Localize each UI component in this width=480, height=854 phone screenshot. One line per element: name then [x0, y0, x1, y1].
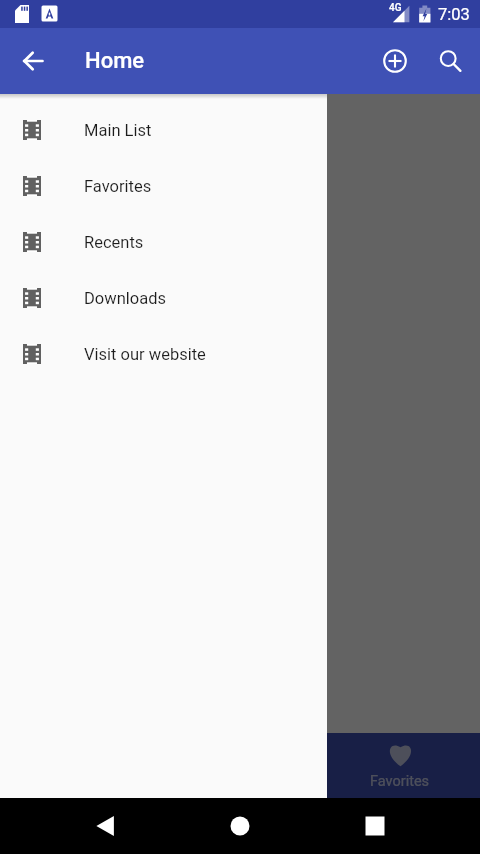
button[interactable]: Recents — [0, 214, 327, 270]
button[interactable]: Favorites — [0, 158, 327, 214]
staticText: Home — [85, 48, 145, 74]
staticText: Favorites — [370, 773, 430, 790]
staticText: Main List — [84, 121, 152, 140]
staticText: Visit our website — [84, 345, 206, 364]
staticText: Recents — [84, 233, 144, 252]
staticText: 4G — [389, 2, 402, 14]
button[interactable]: Home — [212, 798, 268, 854]
button[interactable]: Main List — [0, 102, 327, 158]
button[interactable]: Add — [371, 37, 419, 85]
staticText: Downloads — [84, 289, 166, 308]
button[interactable]: Recents — [347, 798, 403, 854]
staticText: 7:03 — [438, 5, 470, 24]
button[interactable]: Downloads — [0, 270, 327, 326]
button[interactable]: Favorites — [320, 733, 480, 798]
button[interactable]: Search — [425, 37, 473, 85]
button[interactable]: Back — [9, 37, 57, 85]
button[interactable] — [0, 28, 480, 798]
button[interactable]: Visit our website — [0, 326, 327, 382]
button[interactable]: Back — [77, 798, 133, 854]
staticText: Favorites — [84, 177, 152, 196]
